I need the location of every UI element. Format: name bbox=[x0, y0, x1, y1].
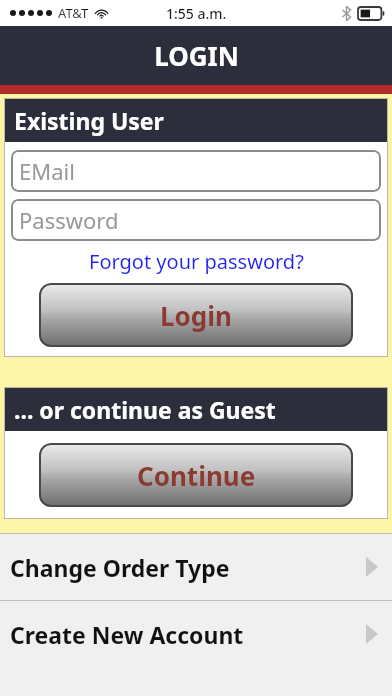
staticText: Login bbox=[160, 298, 232, 333]
staticText: Existing User bbox=[14, 105, 164, 136]
staticText: Create New Account bbox=[10, 619, 244, 650]
button[interactable]: EMail bbox=[11, 150, 381, 192]
staticText: Continue bbox=[137, 458, 256, 493]
staticText: Change Order Type bbox=[10, 552, 230, 583]
button[interactable]: Login bbox=[39, 283, 353, 347]
button[interactable]: Password bbox=[11, 199, 381, 241]
staticText: EMail bbox=[19, 156, 75, 186]
button[interactable]: Continue bbox=[39, 443, 353, 507]
button[interactable]: Forgot your password? bbox=[89, 248, 304, 275]
staticText: LOGIN bbox=[154, 38, 239, 73]
button[interactable]: Create New Account bbox=[0, 601, 392, 667]
button[interactable]: Change Order Type bbox=[0, 534, 392, 600]
staticText: AT&T bbox=[58, 4, 89, 22]
staticText: Password bbox=[19, 205, 119, 235]
staticText: ... or continue as Guest bbox=[14, 394, 276, 425]
staticText: 1:55 a.m. bbox=[166, 4, 227, 23]
